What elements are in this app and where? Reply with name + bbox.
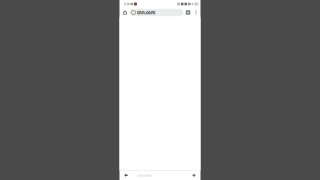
staticText: 80 xyxy=(194,1,198,7)
button[interactable]: cnn.com xyxy=(131,170,152,180)
staticText: cnn.com xyxy=(137,172,152,178)
button[interactable]: Home xyxy=(120,8,129,17)
button[interactable]: Back xyxy=(120,170,131,180)
button[interactable]: Tabs xyxy=(183,8,193,17)
staticText: cnn.com xyxy=(137,10,155,15)
staticText: 3 xyxy=(187,10,189,14)
button[interactable]: More options xyxy=(193,8,199,17)
button[interactable]: New tab xyxy=(188,170,199,180)
